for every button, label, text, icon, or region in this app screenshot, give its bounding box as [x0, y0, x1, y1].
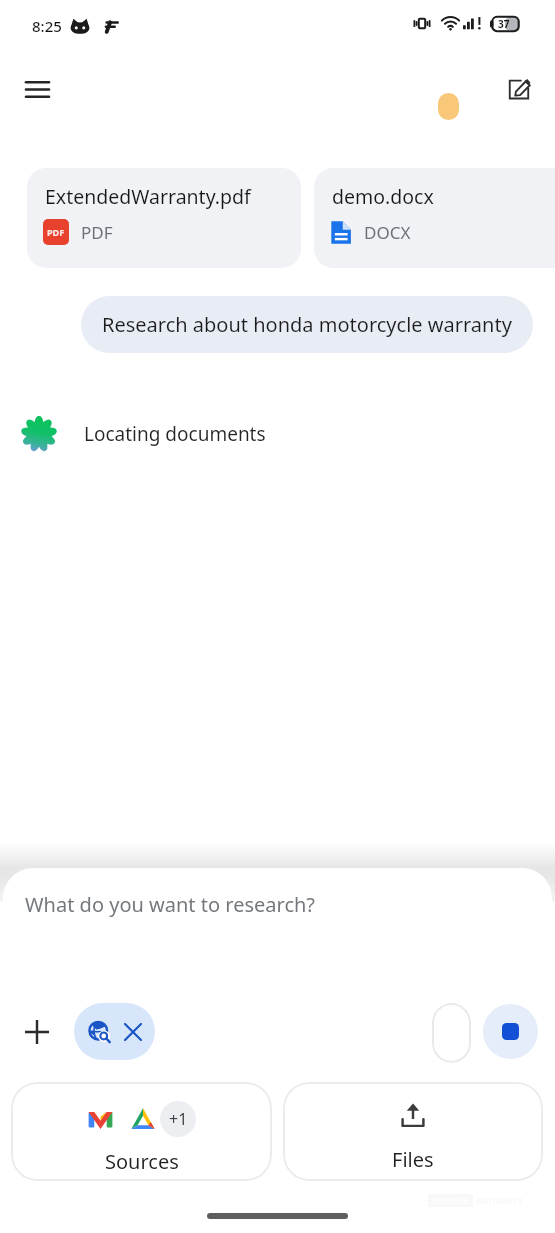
staticText: 37	[498, 17, 510, 31]
button[interactable]: Voice input	[432, 1003, 471, 1063]
staticText: demo.docx	[332, 183, 434, 210]
staticText: Research about honda motorcycle warranty	[102, 311, 512, 338]
staticText: 8:25	[32, 16, 62, 36]
staticText: +1	[169, 1108, 188, 1130]
button[interactable]: New chat	[496, 66, 541, 111]
staticText: Locating documents	[84, 421, 266, 447]
staticText: ExtendedWarranty.pdf	[45, 183, 251, 210]
button[interactable]: Research about honda motorcycle warranty	[81, 296, 533, 353]
button[interactable]: Add	[14, 1009, 60, 1055]
button[interactable]: demo.docx	[314, 168, 555, 268]
staticText: Files	[392, 1146, 434, 1173]
button[interactable]: Stop	[483, 1004, 538, 1059]
staticText: DOCX	[364, 221, 411, 244]
staticText: PDF	[47, 226, 65, 238]
staticText: What do you want to research?	[25, 891, 316, 918]
button[interactable]: Menu	[13, 65, 61, 113]
button[interactable]: +1	[11, 1082, 272, 1181]
button[interactable]	[74, 1003, 155, 1060]
button[interactable]: ExtendedWarranty.pdf	[27, 168, 301, 268]
staticText: Sources	[105, 1148, 179, 1175]
button[interactable]: Files	[283, 1082, 543, 1181]
staticText: PDF	[81, 221, 113, 244]
